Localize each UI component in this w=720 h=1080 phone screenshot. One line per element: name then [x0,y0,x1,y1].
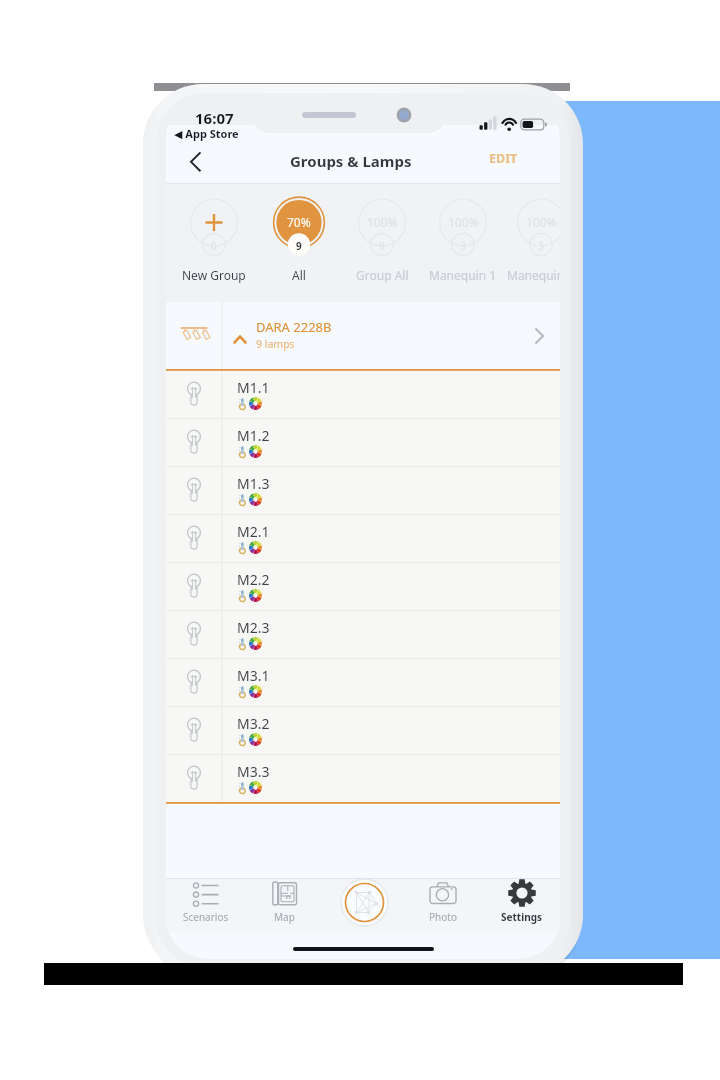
button[interactable]: M3.3 [166,755,560,802]
staticText: 3 [460,239,466,253]
button[interactable]: M3.2 [166,707,560,754]
button[interactable]: Settings [482,879,560,932]
staticText: Manequin 2 [507,267,560,283]
staticText: M1.1 [237,378,270,397]
button[interactable]: M2.1 [166,515,560,562]
staticText: M2.3 [237,618,270,637]
staticText: 9 [379,239,385,253]
button[interactable]: DARA 2228B [166,302,560,369]
staticText: Settings [501,910,542,924]
staticText: Map [274,910,295,924]
button[interactable]: Scenarios [166,879,245,932]
button[interactable]: M3.1 [166,659,560,706]
staticText: M3.3 [237,762,270,781]
staticText: New Group [182,267,246,283]
button[interactable]: M1.1 [166,371,560,418]
button[interactable]: EDIT [474,145,532,171]
staticText: 100% [526,214,557,230]
staticText: ◀ App Store [174,126,239,141]
button[interactable]: Photo [403,879,482,932]
button[interactable]: 100% [501,184,560,302]
button[interactable]: M1.3 [166,467,560,514]
button[interactable]: 100% [342,184,422,302]
button[interactable]: 100% [423,184,503,302]
staticText: 9 lamps [256,337,295,351]
button[interactable]: M1.2 [166,419,560,466]
staticText: EDIT [489,150,518,167]
staticText: M3.2 [237,714,270,733]
staticText: Scenarios [183,910,229,924]
staticText: M1.2 [237,426,270,445]
staticText: Groups & Lamps [290,151,412,171]
staticText: M2.2 [237,570,270,589]
staticText: M1.3 [237,474,270,493]
button[interactable]: M2.3 [166,611,560,658]
staticText: M3.1 [237,666,270,685]
button[interactable]: Mesh network [325,879,404,932]
staticText: Group All [356,267,409,283]
staticText: 70% [287,214,311,230]
staticText: 100% [367,214,398,230]
staticText: Photo [429,910,457,924]
staticText: DARA 2228B [256,318,332,336]
button[interactable]: 70% [259,184,339,302]
staticText: 100% [448,214,479,230]
button[interactable]: Back [171,135,213,177]
staticText: 9 [296,239,302,253]
staticText: 0 [211,239,217,253]
button[interactable]: 0 [174,184,254,302]
staticText: M2.1 [237,522,270,541]
staticText: All [292,267,306,283]
staticText: 16:07 [195,108,234,128]
button[interactable]: M2.2 [166,563,560,610]
staticText: Manequin 1 [429,267,497,283]
staticText: 3 [538,239,544,253]
button[interactable]: Map [245,879,324,932]
